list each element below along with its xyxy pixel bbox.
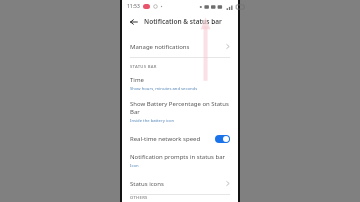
staticText: Time [130, 76, 144, 84]
button[interactable]: Show Battery Percentage on Status Bar [122, 96, 238, 128]
staticText: Inside the battery icon [130, 118, 175, 124]
button[interactable]: Manage notifications [122, 36, 238, 57]
button[interactable]: Notification prompts in status bar [122, 149, 238, 173]
staticText: OTHERS [130, 195, 148, 200]
staticText: Icon [130, 163, 139, 169]
staticText: Show hours, minutes and seconds [130, 86, 198, 92]
staticText: Notification prompts in status bar [130, 153, 226, 161]
staticText: Manage notifications [130, 43, 226, 51]
button[interactable]: Real-time network speed [122, 128, 238, 149]
staticText: Real-time network speed [130, 135, 211, 143]
staticText: Show Battery Percentage on Status Bar [130, 100, 230, 116]
button[interactable]: Back [128, 16, 140, 28]
button[interactable]: Status icons [122, 173, 238, 194]
button[interactable]: Toggle on [215, 135, 230, 143]
staticText: 11:53 [127, 3, 140, 10]
staticText: Status icons [130, 180, 226, 188]
staticText: STATUS BAR [130, 64, 157, 70]
staticText: Notification & status bar [144, 17, 222, 26]
button[interactable]: Time [122, 72, 238, 96]
